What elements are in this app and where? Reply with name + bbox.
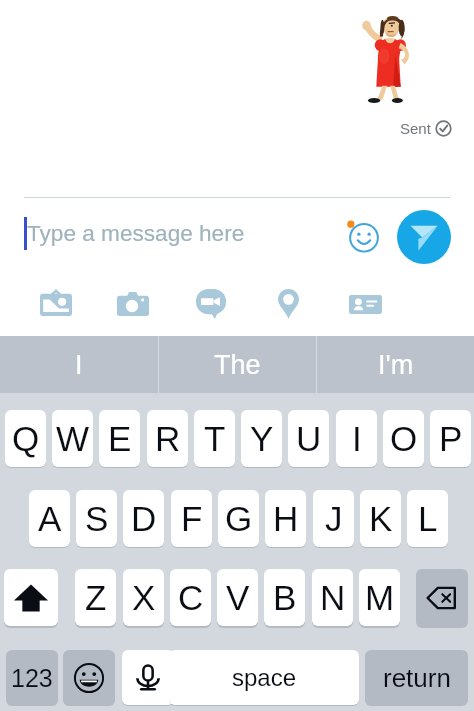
button[interactable]: N — [312, 569, 353, 626]
staticText: G — [225, 499, 253, 538]
staticText: U — [296, 419, 322, 458]
staticText: M — [365, 578, 395, 617]
button[interactable]: L — [407, 490, 448, 547]
button[interactable]: M — [359, 569, 400, 626]
button[interactable]: R — [147, 410, 188, 467]
button[interactable]: Shift — [4, 569, 58, 626]
button[interactable]: A — [29, 490, 70, 547]
button[interactable]: I — [0, 336, 158, 393]
button[interactable]: O — [383, 410, 424, 467]
staticText: H — [273, 499, 299, 538]
button[interactable]: Camera — [110, 281, 156, 327]
button[interactable]: F — [171, 490, 212, 547]
staticText: J — [325, 499, 343, 538]
staticText: Q — [12, 419, 40, 458]
button[interactable]: Emoji — [341, 213, 387, 259]
staticText: I'm — [378, 350, 414, 380]
staticText: S — [85, 499, 109, 538]
staticText: The — [214, 350, 261, 380]
staticText: Sent — [400, 120, 431, 137]
button[interactable]: Emoji keyboard — [63, 650, 115, 705]
button[interactable]: K — [360, 490, 401, 547]
button[interactable]: D — [123, 490, 164, 547]
staticText: R — [155, 419, 181, 458]
button[interactable]: Backspace — [416, 569, 468, 626]
staticText: I — [75, 350, 83, 380]
button[interactable]: space — [169, 650, 359, 705]
staticText: E — [108, 419, 132, 458]
button[interactable]: W — [52, 410, 93, 467]
button[interactable]: B — [264, 569, 305, 626]
staticText: space — [232, 664, 297, 691]
button[interactable]: S — [76, 490, 117, 547]
staticText: return — [383, 663, 451, 692]
staticText: D — [131, 499, 157, 538]
staticText: 123 — [11, 664, 53, 692]
button[interactable]: The — [159, 336, 316, 393]
button[interactable]: Gallery — [33, 279, 79, 325]
button[interactable]: return — [365, 650, 468, 705]
staticText: A — [38, 499, 62, 538]
staticText: Z — [85, 578, 107, 617]
button[interactable]: I — [336, 410, 377, 467]
staticText: F — [181, 499, 203, 538]
staticText: T — [204, 419, 226, 458]
staticText: X — [132, 578, 156, 617]
button[interactable]: G — [218, 490, 259, 547]
button[interactable]: Z — [75, 569, 116, 626]
staticText: B — [273, 578, 297, 617]
button[interactable]: T — [194, 410, 235, 467]
staticText: N — [320, 578, 346, 617]
staticText: W — [56, 419, 90, 458]
staticText: V — [226, 578, 250, 617]
staticText: K — [369, 499, 393, 538]
button[interactable]: E — [99, 410, 140, 467]
staticText: P — [439, 419, 463, 458]
button[interactable]: I'm — [317, 336, 474, 393]
button[interactable]: Contact — [342, 281, 388, 327]
button[interactable]: C — [170, 569, 211, 626]
button[interactable]: Location — [265, 281, 311, 327]
staticText: C — [178, 578, 204, 617]
button[interactable]: U — [288, 410, 329, 467]
staticText: L — [418, 499, 438, 538]
button[interactable]: X — [123, 569, 164, 626]
button[interactable]: Send — [397, 210, 451, 264]
button[interactable]: Y — [241, 410, 282, 467]
button[interactable]: V — [217, 569, 258, 626]
button[interactable]: P — [430, 410, 471, 467]
button[interactable]: 123 — [6, 650, 58, 705]
staticText: Type a message here — [27, 221, 245, 246]
button[interactable]: Q — [5, 410, 46, 467]
button[interactable]: H — [265, 490, 306, 547]
staticText: Y — [250, 419, 274, 458]
staticText: I — [352, 419, 362, 458]
button[interactable]: Voice input — [122, 650, 174, 705]
button[interactable]: J — [313, 490, 354, 547]
staticText: O — [390, 419, 418, 458]
button[interactable]: Video — [188, 281, 234, 327]
